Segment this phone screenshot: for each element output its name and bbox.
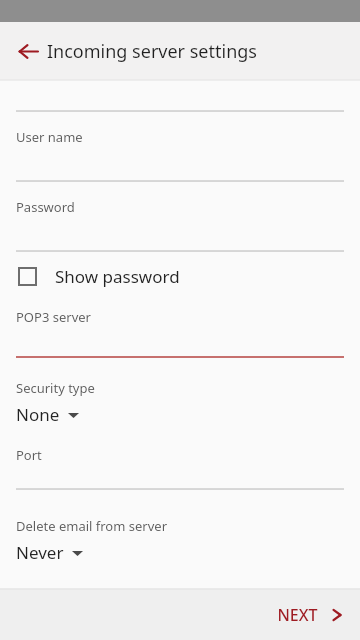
staticText: POP3 server: [16, 308, 91, 326]
staticText: Incoming server settings: [47, 39, 257, 64]
staticText: NEXT: [277, 604, 318, 626]
staticText: Show password: [55, 265, 180, 288]
button[interactable]: NEXT: [259, 594, 360, 636]
staticText: Port: [16, 446, 42, 464]
button[interactable]: Show password: [16, 252, 344, 300]
staticText: None: [16, 403, 60, 426]
staticText: Never: [16, 541, 64, 564]
button[interactable]: POP3 server: [16, 300, 344, 356]
staticText: Password: [16, 198, 75, 216]
button[interactable]: Security type: [16, 358, 344, 426]
button[interactable]: Password: [16, 182, 344, 250]
staticText: User name: [16, 128, 83, 146]
staticText: Delete email from server: [16, 517, 167, 535]
staticText: Security type: [16, 379, 95, 397]
button[interactable]: Back: [10, 33, 46, 69]
button[interactable]: Port: [16, 426, 344, 488]
button[interactable]: User name: [16, 112, 344, 180]
button[interactable]: Delete email from server: [16, 490, 344, 564]
